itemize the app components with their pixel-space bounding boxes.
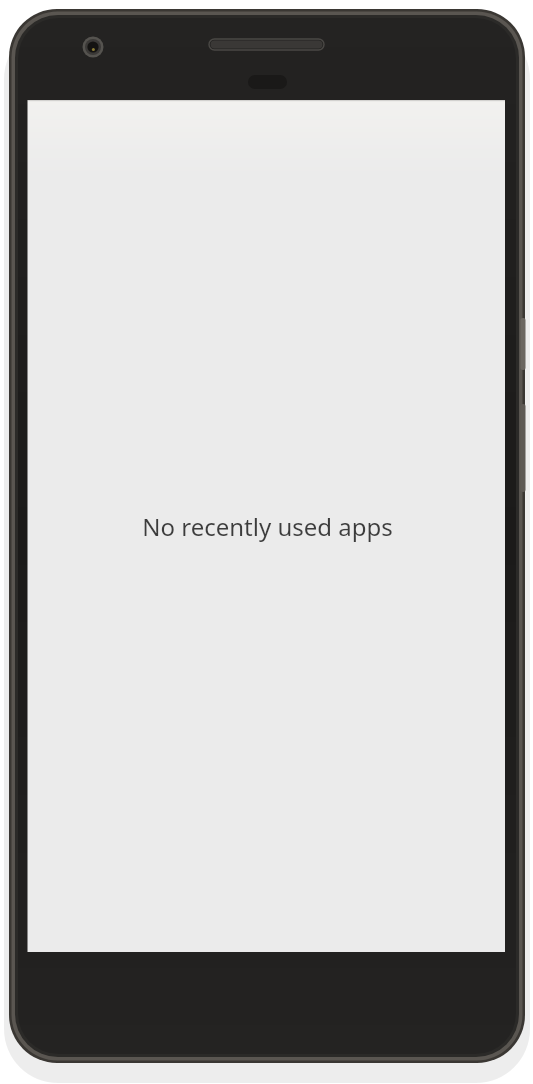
button[interactable]: No recently used apps [28,100,506,952]
staticText: No recently used apps [142,510,393,543]
